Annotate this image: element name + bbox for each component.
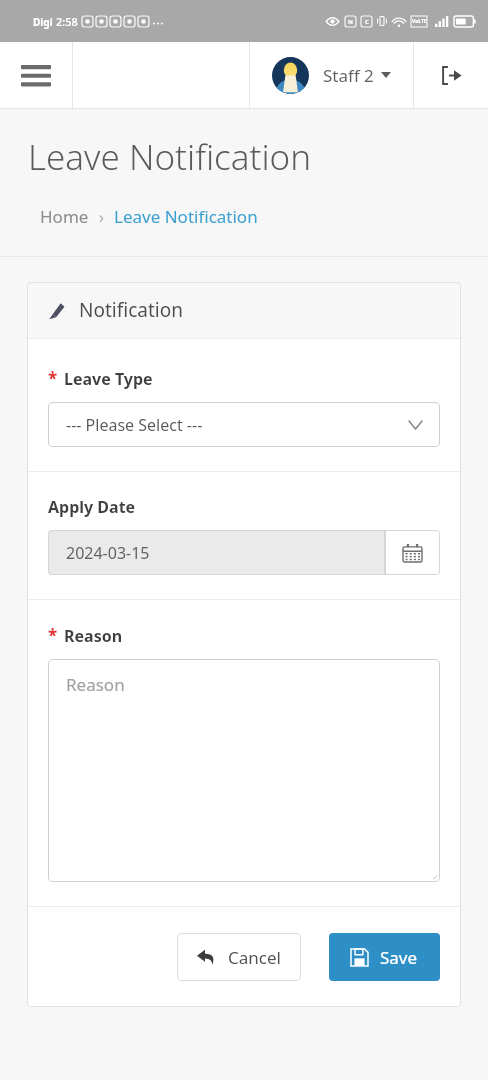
staticText: Reason [66, 673, 125, 696]
staticText: --- Please Select --- [66, 414, 203, 436]
staticText: Apply Date [48, 496, 136, 518]
staticText: N [348, 18, 353, 26]
button[interactable]: Logout [414, 42, 488, 108]
staticText: Reason [64, 625, 123, 647]
button[interactable]: 2024-03-15 [48, 530, 385, 575]
staticText: Digi [33, 15, 53, 29]
staticText: C [365, 18, 369, 26]
staticText: Save [380, 946, 418, 969]
staticText: Staff 2 [323, 64, 374, 87]
button[interactable]: Home [40, 205, 89, 228]
staticText: 2024-03-15 [66, 542, 150, 564]
button[interactable]: Reason [48, 659, 440, 882]
staticText: Leave Notification [28, 133, 311, 181]
button[interactable]: Staff 2 [250, 42, 413, 108]
button[interactable]: Menu [0, 42, 72, 108]
staticText: * [48, 624, 58, 647]
staticText: VoLTE [412, 18, 427, 25]
staticText: * [48, 367, 58, 390]
button[interactable]: Cancel [177, 933, 301, 981]
button[interactable]: --- Please Select --- [48, 402, 440, 447]
staticText: 2:58 [56, 14, 78, 29]
staticText: › [99, 206, 104, 228]
staticText: Notification [79, 297, 183, 323]
staticText: Cancel [228, 946, 281, 969]
staticText: Leave Type [64, 368, 153, 390]
button[interactable]: Save [329, 933, 440, 981]
button[interactable]: Leave Notification [114, 205, 258, 228]
button[interactable]: Pick date [385, 530, 440, 575]
